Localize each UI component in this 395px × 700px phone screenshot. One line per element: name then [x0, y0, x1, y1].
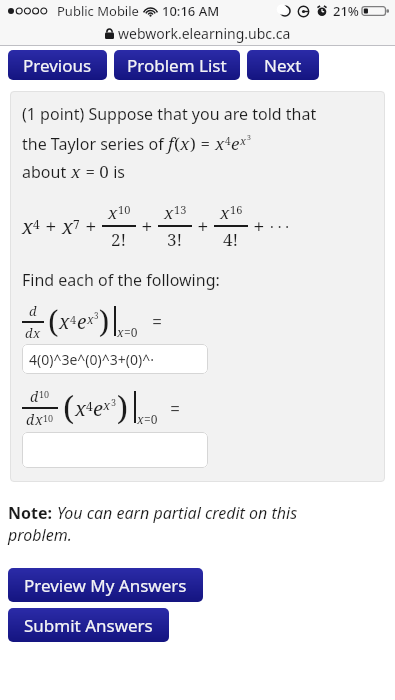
staticText: 3 — [247, 133, 251, 143]
staticText: 3 — [94, 310, 99, 321]
staticText: x — [59, 309, 70, 335]
staticText: You can earn partial credit on this — [57, 502, 298, 524]
staticText: x — [22, 213, 33, 240]
staticText: 3 — [111, 396, 117, 408]
staticText: x — [108, 201, 118, 224]
staticText: f — [168, 132, 174, 155]
staticText: x — [87, 311, 94, 327]
staticText: Next — [264, 54, 302, 77]
staticText: = — [152, 309, 163, 334]
staticText: problem. — [8, 524, 72, 546]
staticText: 21% — [333, 2, 359, 20]
staticText: 10:16 AM — [162, 2, 220, 20]
staticText: 7 — [73, 216, 80, 232]
staticText: x — [117, 324, 124, 340]
staticText: the Taylor series of — [22, 133, 168, 155]
staticText: webwork.elearning.ubc.ca — [118, 24, 291, 43]
staticText: 13 — [174, 202, 187, 217]
staticText: 4(0)^3e^(0)^3+(0)^· — [29, 350, 154, 369]
staticText: x — [180, 132, 190, 155]
staticText: is — [109, 161, 125, 183]
staticText: + — [136, 213, 158, 240]
staticText: Problem List — [127, 54, 227, 77]
staticText: x — [71, 160, 81, 183]
staticText: 3! — [167, 228, 183, 251]
staticText: = 0 — [81, 160, 109, 183]
staticText: 10 — [39, 388, 50, 400]
staticText: d — [30, 387, 39, 406]
staticText: ) — [99, 301, 110, 342]
staticText: + — [80, 213, 102, 240]
staticText: x — [164, 201, 174, 224]
button[interactable]: Previous — [8, 50, 107, 80]
button[interactable] — [22, 432, 208, 468]
staticText: = — [170, 396, 181, 421]
staticText: 4 — [70, 312, 77, 327]
button[interactable]: 4(0)^3e^(0)^3+(0)^· — [22, 344, 208, 374]
staticText: ) — [190, 132, 196, 155]
staticText: d — [26, 410, 35, 429]
staticText: Find each of the following: — [22, 269, 220, 291]
button[interactable]: Next — [247, 50, 319, 80]
staticText: Note: — [8, 502, 57, 524]
staticText: 4 — [33, 216, 40, 232]
staticText: 10 — [43, 412, 54, 424]
staticText: Previous — [23, 54, 92, 77]
staticText: Preview My Answers — [24, 574, 187, 597]
staticText: d — [29, 302, 37, 320]
staticText: e — [77, 309, 87, 335]
staticText: e — [93, 395, 103, 422]
staticText: x — [240, 133, 247, 148]
staticText: about — [22, 161, 71, 183]
button[interactable]: Problem List — [114, 50, 240, 80]
staticText: x — [35, 410, 43, 429]
staticText: = — [196, 132, 215, 155]
staticText: x — [33, 324, 41, 342]
staticText: x — [215, 132, 225, 155]
staticText: + — [40, 213, 62, 240]
staticText: ( — [63, 386, 75, 430]
button[interactable]: Submit Answers — [8, 608, 169, 642]
staticText: 4! — [223, 228, 239, 251]
staticText: + — [248, 213, 270, 240]
staticText: Public Mobile — [57, 2, 139, 20]
staticText: (1 point) Suppose that you are told that — [22, 103, 317, 125]
staticText: Submit Answers — [24, 614, 153, 637]
staticText: x — [137, 411, 144, 427]
staticText: x — [62, 213, 73, 240]
staticText: x — [103, 396, 111, 414]
staticText: =0 — [144, 411, 158, 427]
staticText: x — [220, 201, 230, 224]
staticText: 4 — [86, 398, 93, 414]
staticText: =0 — [124, 324, 138, 340]
button[interactable]: Preview My Answers — [8, 568, 203, 602]
staticText: 2! — [111, 228, 127, 251]
staticText: ( — [48, 301, 59, 342]
staticText: d — [25, 324, 33, 342]
staticText: 4 — [225, 134, 231, 148]
button[interactable]: webwork.elearning.ubc.ca — [0, 22, 395, 45]
staticText: 10 — [118, 202, 131, 217]
staticText: 16 — [230, 202, 243, 217]
staticText: ) — [117, 386, 129, 430]
staticText: x — [75, 395, 86, 422]
staticText: + — [192, 213, 214, 240]
staticText: · · · — [270, 216, 290, 236]
staticText: e — [231, 132, 240, 155]
staticText: ( — [174, 132, 180, 155]
